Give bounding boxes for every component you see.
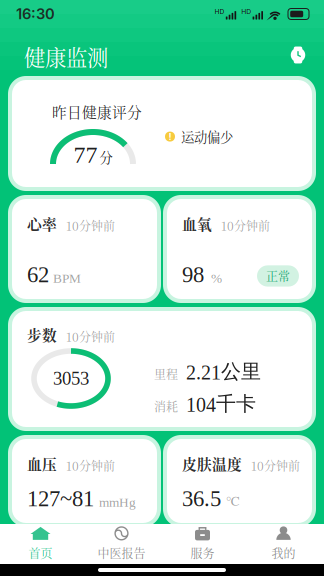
staticText: 10分钟前: [251, 457, 300, 474]
staticText: 2.21公里: [186, 359, 261, 384]
staticText: 里程: [154, 365, 178, 383]
staticText: 77: [73, 141, 97, 168]
staticText: 10分钟前: [66, 217, 115, 234]
staticText: BPM: [53, 271, 81, 286]
staticText: 正常: [266, 267, 290, 285]
staticText: %: [211, 271, 222, 286]
staticText: 运动偏少: [181, 127, 233, 146]
staticText: mmHg: [99, 495, 136, 510]
staticText: 我的: [271, 544, 295, 562]
staticText: 62: [27, 262, 49, 287]
staticText: 中医报告: [97, 544, 145, 562]
button[interactable]: 中医报告: [81, 524, 162, 564]
staticText: 血氧: [182, 213, 212, 234]
button[interactable]: 我的设备: [288, 34, 308, 66]
staticText: 10分钟前: [221, 217, 270, 234]
staticText: 皮肤温度: [182, 453, 242, 474]
staticText: 血压: [27, 453, 57, 474]
staticText: 16:30: [16, 5, 55, 23]
button[interactable]: 昨日健康评分: [8, 76, 316, 191]
staticText: 消耗: [154, 398, 178, 415]
staticText: HD: [241, 7, 251, 15]
staticText: 健康监测: [24, 41, 108, 72]
button[interactable]: 首页: [0, 524, 81, 564]
staticText: 3053: [53, 368, 89, 389]
staticText: 服务: [190, 544, 214, 562]
staticText: 127~81: [27, 486, 94, 511]
button[interactable]: 心率: [8, 195, 161, 303]
staticText: 心率: [27, 213, 57, 234]
staticText: 98: [182, 262, 204, 287]
staticText: !: [168, 131, 171, 142]
staticText: 10分钟前: [66, 328, 115, 345]
staticText: 10分钟前: [66, 457, 115, 474]
button[interactable]: 服务: [162, 524, 243, 564]
staticText: HD: [214, 7, 224, 15]
staticText: 36.5: [182, 486, 221, 511]
staticText: ℃: [226, 492, 240, 510]
button[interactable]: 皮肤温度: [163, 435, 316, 527]
button[interactable]: 血压: [8, 435, 161, 527]
button[interactable]: 我的: [243, 524, 324, 564]
button[interactable]: 血氧: [163, 195, 316, 303]
staticText: 步数: [27, 324, 57, 345]
staticText: 首页: [28, 544, 52, 562]
staticText: 104千卡: [186, 391, 256, 416]
staticText: 昨日健康评分: [52, 101, 142, 122]
button[interactable]: 步数: [8, 307, 316, 431]
staticText: 分: [99, 147, 112, 166]
